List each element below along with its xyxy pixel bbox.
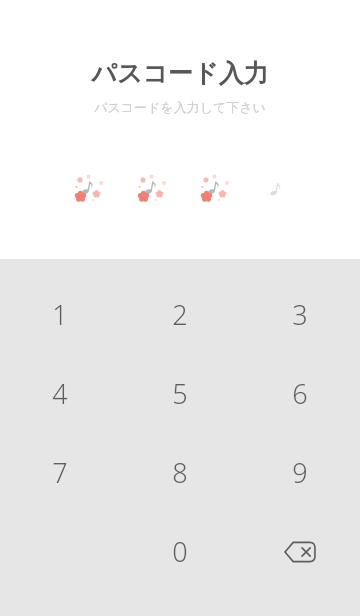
button[interactable]: 9 <box>240 433 360 512</box>
button[interactable]: 5 <box>120 354 240 433</box>
button[interactable]: 0 <box>120 512 240 591</box>
staticText: パスコードを入力して下さい <box>94 99 266 115</box>
button[interactable]: 1 <box>0 275 120 354</box>
button[interactable]: 7 <box>0 433 120 512</box>
button[interactable]: Backspace <box>240 512 360 591</box>
staticText: 2 <box>172 296 188 333</box>
staticText: 5 <box>172 375 188 412</box>
staticText: 7 <box>52 454 68 491</box>
button[interactable]: 3 <box>240 275 360 354</box>
staticText: 6 <box>292 375 308 412</box>
staticText: 8 <box>172 454 188 491</box>
staticText: 0 <box>172 533 188 570</box>
button[interactable]: 6 <box>240 354 360 433</box>
staticText: パスコード入力 <box>91 58 269 89</box>
staticText: 4 <box>52 375 68 412</box>
staticText: 1 <box>52 296 68 333</box>
staticText: 9 <box>292 454 308 491</box>
button[interactable]: 4 <box>0 354 120 433</box>
button[interactable]: 2 <box>120 275 240 354</box>
button[interactable]: 8 <box>120 433 240 512</box>
staticText: 3 <box>292 296 308 333</box>
